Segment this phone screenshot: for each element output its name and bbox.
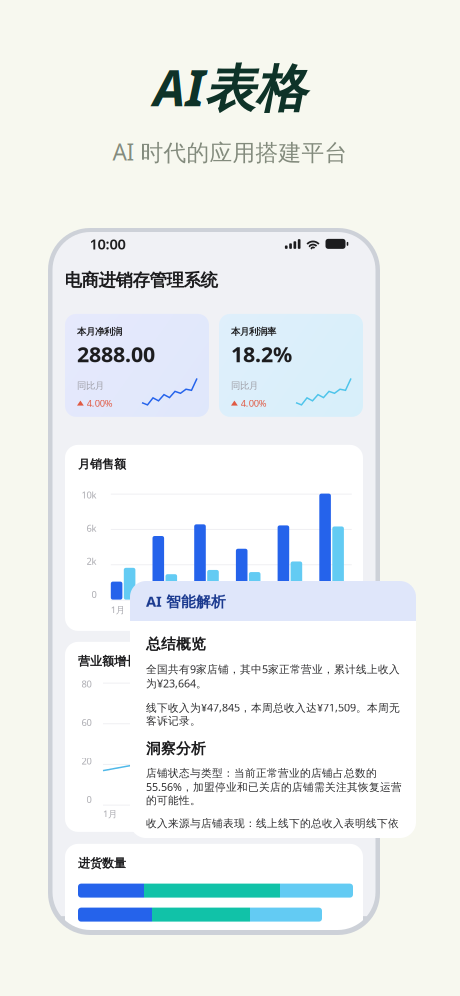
staticText: 60: [81, 716, 91, 729]
staticText: 20: [81, 755, 91, 767]
staticText: 本月净利润: [77, 326, 122, 337]
staticText: 0: [91, 588, 96, 601]
staticText: 电商进销存管理系统: [64, 270, 217, 291]
staticText: 全国共有9家店铺，其中5家正常营业，累计线上收入为¥23,664。: [146, 662, 400, 690]
staticText: 0: [86, 793, 91, 806]
staticText: 月销售额: [78, 457, 126, 472]
staticText: 同比月: [77, 380, 104, 391]
staticText: 营业额增长: [78, 654, 138, 669]
staticText: 总结概览: [146, 635, 206, 653]
staticText: 10k: [81, 489, 96, 501]
button[interactable]: 本月利润率: [219, 314, 363, 417]
staticText: AI 时代的应用搭建平台: [112, 136, 347, 167]
staticText: 2888.00: [77, 340, 155, 368]
staticText: AI 智能解析: [146, 591, 226, 611]
staticText: 1月: [103, 808, 117, 820]
staticText: 6k: [86, 522, 96, 534]
staticText: 本月利润率: [231, 326, 276, 337]
staticText: 4.00%: [241, 397, 267, 409]
staticText: 18.2%: [231, 340, 292, 368]
staticText: 1月: [111, 604, 125, 616]
staticText: 同比月: [231, 380, 258, 391]
staticText: 10:00: [89, 234, 125, 254]
staticText: AI表格: [153, 53, 306, 120]
staticText: 4.00%: [87, 397, 113, 409]
staticText: 2k: [86, 555, 96, 567]
staticText: 店铺状态与类型：当前正常营业的店铺占总数的55.56%，加盟停业和已关店的店铺需…: [146, 767, 402, 807]
staticText: 80: [81, 678, 91, 690]
staticText: 线下收入为¥47,845，本周总收入达¥71,509。本周无客诉记录。: [146, 700, 400, 728]
button[interactable]: 本月净利润: [65, 314, 209, 417]
staticText: 进货数量: [78, 856, 126, 871]
staticText: 收入来源与店铺表现：线上线下的总收入表明线下依: [146, 817, 399, 830]
staticText: 洞察分析: [146, 740, 206, 758]
